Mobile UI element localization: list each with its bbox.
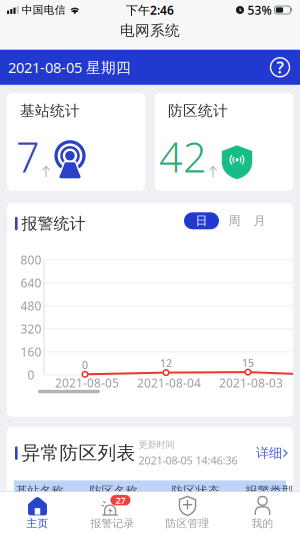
- button[interactable]: 27: [75, 496, 150, 530]
- staticText: 15: [242, 355, 254, 370]
- staticText: 0: [82, 358, 88, 372]
- staticText: 160: [20, 344, 41, 360]
- staticText: 2021-08-05 星期四: [8, 58, 131, 77]
- staticText: 下午2:46: [126, 2, 174, 18]
- staticText: 0: [27, 367, 34, 383]
- staticText: 53%: [247, 2, 271, 18]
- staticText: ?: [276, 57, 283, 78]
- staticText: 异常防区列表: [22, 442, 136, 465]
- staticText: 报警统计: [22, 214, 86, 233]
- staticText: 防区状态: [171, 484, 219, 498]
- staticText: 2021-08-03: [219, 375, 283, 391]
- staticText: 更新时间: [139, 439, 175, 450]
- staticText: 42: [159, 129, 207, 184]
- staticText: 480: [20, 298, 41, 314]
- staticText: 月: [253, 213, 265, 228]
- staticText: 日: [195, 213, 207, 228]
- staticText: 2021-08-05: [55, 375, 119, 391]
- button[interactable]: 周: [219, 212, 250, 230]
- staticText: 27: [115, 494, 125, 506]
- staticText: 640: [20, 275, 41, 291]
- staticText: 2021-08-04: [137, 375, 201, 391]
- button[interactable]: 月: [250, 212, 269, 230]
- button[interactable]: 防区管理: [150, 496, 225, 530]
- staticText: 详细: [256, 445, 282, 461]
- staticText: 中国电信: [22, 3, 66, 16]
- button[interactable]: 详细: [256, 445, 293, 461]
- staticText: 周: [228, 213, 240, 228]
- staticText: 基站名称: [15, 484, 63, 498]
- staticText: 报警类型: [245, 484, 293, 498]
- staticText: 我的: [251, 517, 273, 530]
- staticText: 防区统计: [168, 102, 228, 120]
- staticText: 报警记录: [90, 517, 134, 530]
- staticText: 12: [160, 356, 172, 370]
- staticText: 2021-08-05 14:46:36: [139, 453, 238, 467]
- button[interactable]: 日: [184, 212, 219, 230]
- staticText: 主页: [26, 517, 48, 530]
- button[interactable]: 我的: [225, 496, 300, 530]
- button[interactable]: 帮助: [268, 55, 292, 79]
- button[interactable]: 主页: [0, 496, 75, 530]
- staticText: 800: [20, 252, 41, 268]
- staticText: 防区管理: [165, 517, 209, 530]
- staticText: 7: [16, 129, 40, 184]
- staticText: 基站统计: [20, 102, 80, 120]
- staticText: 320: [20, 321, 41, 337]
- staticText: 电网系统: [120, 21, 180, 39]
- staticText: 防区名称: [89, 484, 137, 498]
